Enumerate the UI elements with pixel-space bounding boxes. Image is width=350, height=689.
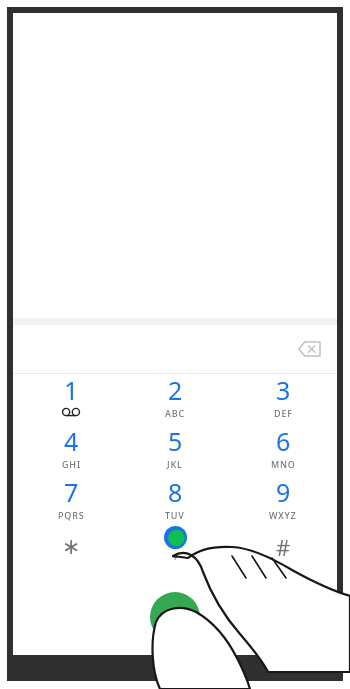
staticText: 3 <box>276 373 291 407</box>
staticText: 9 <box>276 475 291 509</box>
button[interactable]: Backspace <box>13 325 337 373</box>
button[interactable]: ∗ <box>31 524 111 570</box>
button[interactable]: 9 <box>243 475 323 521</box>
button[interactable]: 1 <box>31 373 111 419</box>
button[interactable]: 8 <box>135 475 215 521</box>
button[interactable]: 6 <box>243 424 323 470</box>
staticText: + <box>172 549 179 564</box>
staticText: JKL <box>167 458 183 470</box>
staticText: 8 <box>168 475 183 509</box>
button[interactable]: 7 <box>31 475 111 521</box>
staticText: 5 <box>168 424 183 458</box>
staticText: ∗ <box>62 534 81 560</box>
staticText: 6 <box>276 424 291 458</box>
button[interactable]: 3 <box>243 373 323 419</box>
staticText: MNO <box>271 458 296 470</box>
button[interactable]: 0 plus <box>135 526 215 572</box>
button[interactable]: Call <box>150 592 200 642</box>
button[interactable]: # <box>243 524 323 570</box>
staticText: TUV <box>165 509 185 521</box>
button[interactable]: 2 <box>135 373 215 419</box>
staticText: # <box>276 532 291 562</box>
staticText: DEF <box>274 407 293 419</box>
button[interactable]: 4 <box>31 424 111 470</box>
staticText: 7 <box>64 475 79 509</box>
staticText: ABC <box>165 407 185 419</box>
staticText: 4 <box>64 424 79 458</box>
staticText: GHI <box>62 458 81 470</box>
staticText: 2 <box>168 373 183 407</box>
button[interactable]: Backspace <box>289 329 329 369</box>
staticText: PQRS <box>58 509 85 521</box>
staticText: 1 <box>64 373 79 407</box>
button[interactable]: 5 <box>135 424 215 470</box>
staticText: WXYZ <box>269 509 297 521</box>
